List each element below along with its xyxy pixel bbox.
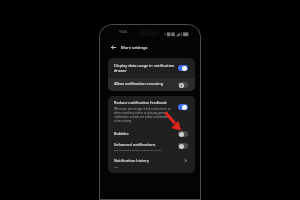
button[interactable]: Reduce notification feedback [108,96,195,127]
button[interactable]: Notification history [108,154,195,173]
button[interactable]: Toggle on [178,104,188,110]
button[interactable]: Toggle off [178,143,188,149]
staticText: Notification history [114,158,149,163]
staticText: More settings [121,45,148,50]
button[interactable]: Display data usage in notification [108,58,195,77]
staticText: Allow notification snoozing [114,81,163,86]
staticText: drawer [114,68,127,73]
staticText: When you see an app in full screen (such… [114,107,172,123]
button[interactable]: Toggle off [178,82,188,88]
button[interactable]: Toggle off [178,131,188,137]
button[interactable]: Back [109,43,118,52]
button[interactable]: Allow notification snoozing [108,78,195,91]
button[interactable]: Toggle on [178,65,188,71]
staticText: 16:35 [119,30,128,34]
staticText: Enhanced notifications [114,142,156,147]
button[interactable]: Bubbles [108,127,195,138]
staticText: Reduce notification feedback [114,100,167,105]
staticText: Bubbles [114,131,129,136]
staticText: Display data usage in notification [114,63,175,68]
button[interactable]: Enhanced notifications [108,138,195,154]
staticText: Get suggested actions, replies and more [114,148,162,151]
staticText: Off [114,165,118,168]
